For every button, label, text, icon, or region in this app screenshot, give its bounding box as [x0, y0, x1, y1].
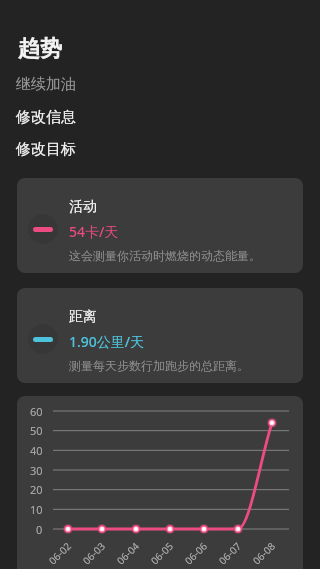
staticText: 继续加油 — [16, 75, 76, 94]
staticText: 距离 — [69, 308, 97, 326]
staticText: 测量每天步数行加跑步的总距离。 — [69, 358, 249, 373]
staticText: 趋势 — [18, 35, 62, 63]
button[interactable]: 修改信息 — [8, 103, 108, 131]
button[interactable]: 活动趋势折线图 — [17, 396, 303, 569]
staticText: 这会测量你活动时燃烧的动态能量。 — [69, 248, 261, 263]
button[interactable]: 修改目标 — [8, 135, 108, 163]
staticText: 1.90公里/天 — [69, 332, 145, 351]
button[interactable]: 距离 — [17, 288, 303, 383]
staticText: 活动 — [69, 198, 97, 216]
staticText: 修改信息 — [16, 108, 76, 127]
button[interactable]: 活动 — [17, 178, 303, 273]
staticText: 修改目标 — [16, 140, 76, 159]
staticText: 54卡/天 — [69, 222, 119, 241]
